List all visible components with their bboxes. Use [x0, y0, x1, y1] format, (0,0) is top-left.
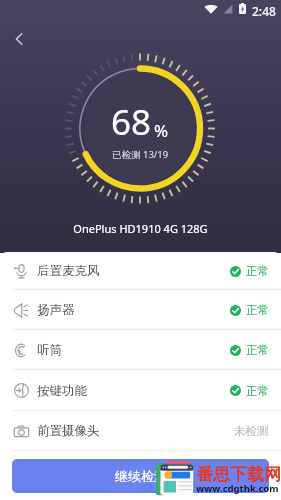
button[interactable]: 扬声器 [0, 290, 281, 330]
staticText: % [154, 119, 169, 142]
button[interactable]: 后置麦克风 [0, 252, 281, 290]
staticText: 前置摄像头 [37, 423, 100, 439]
staticText: 正常 [246, 303, 269, 317]
staticText: 68 [111, 98, 152, 146]
staticText: 按键功能 [37, 383, 87, 399]
staticText: 扬声器 [37, 302, 75, 318]
button[interactable]: 按键功能 [0, 370, 281, 411]
staticText: 听筒 [37, 342, 62, 358]
button[interactable]: Back [6, 26, 32, 52]
staticText: 2:48 [252, 3, 276, 19]
staticText: 番思下载网 [196, 464, 281, 485]
button[interactable]: 前置摄像头 [0, 411, 281, 451]
staticText: 已检测 13/19 [112, 148, 169, 161]
staticText: 未检测 [234, 424, 269, 438]
button[interactable]: 继续检测 [12, 459, 269, 493]
staticText: 正常 [246, 264, 269, 278]
staticText: 后置麦克风 [37, 263, 100, 279]
staticText: www.cdgthk.com [196, 482, 279, 495]
button[interactable]: 听筒 [0, 330, 281, 370]
staticText: 正常 [246, 384, 269, 398]
staticText: 继续检测 [115, 468, 167, 484]
staticText: OnePlus HD1910 4G 128G [0, 221, 281, 236]
staticText: 正常 [246, 343, 269, 357]
